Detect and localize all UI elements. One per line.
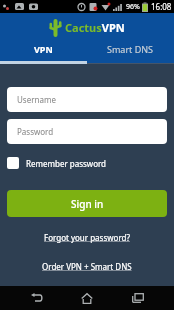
staticText: Sign in (71, 197, 104, 211)
staticText: VPN (34, 43, 53, 55)
staticText: CactusVPN (65, 20, 125, 35)
button[interactable]: Order VPN + Smart DNS (42, 261, 132, 272)
button[interactable]: Username (7, 87, 167, 112)
staticText: Remember password (26, 158, 107, 169)
staticText: 96% (126, 2, 140, 12)
staticText: Username (17, 94, 56, 105)
staticText: Forgot your password? (44, 232, 130, 243)
button[interactable] (21, 286, 51, 310)
staticText: Order VPN + Smart DNS (42, 261, 132, 272)
staticText: 16:08 (151, 1, 172, 12)
button[interactable]: Password (7, 119, 167, 144)
button[interactable]: VPN (0, 41, 87, 61)
button[interactable]: Smart DNS (87, 41, 174, 61)
staticText: Smart DNS (107, 43, 154, 55)
button[interactable]: Remember password (7, 157, 167, 169)
staticText: Password (17, 126, 54, 137)
button[interactable]: Forgot your password? (44, 232, 130, 243)
button[interactable] (72, 286, 102, 310)
button[interactable]: Sign in (7, 190, 167, 217)
button[interactable] (123, 286, 153, 310)
